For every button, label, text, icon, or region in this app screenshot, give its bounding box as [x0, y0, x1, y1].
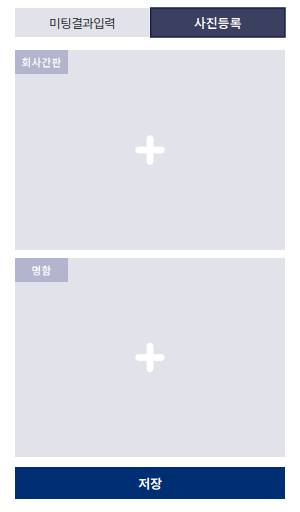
staticText: 저장 [138, 473, 162, 492]
button[interactable]: 미팅결과입력 [15, 8, 149, 37]
staticText: 명함 [31, 262, 51, 278]
staticText: 미팅결과입력 [49, 13, 115, 31]
button[interactable]: 명함 사진 추가 [15, 258, 285, 457]
button[interactable]: 저장 [15, 467, 285, 499]
staticText: 사진등록 [194, 13, 242, 32]
staticText: 회사간판 [21, 54, 61, 70]
button[interactable]: 사진등록 [151, 8, 285, 37]
button[interactable]: 회사간판 사진 추가 [15, 50, 285, 250]
